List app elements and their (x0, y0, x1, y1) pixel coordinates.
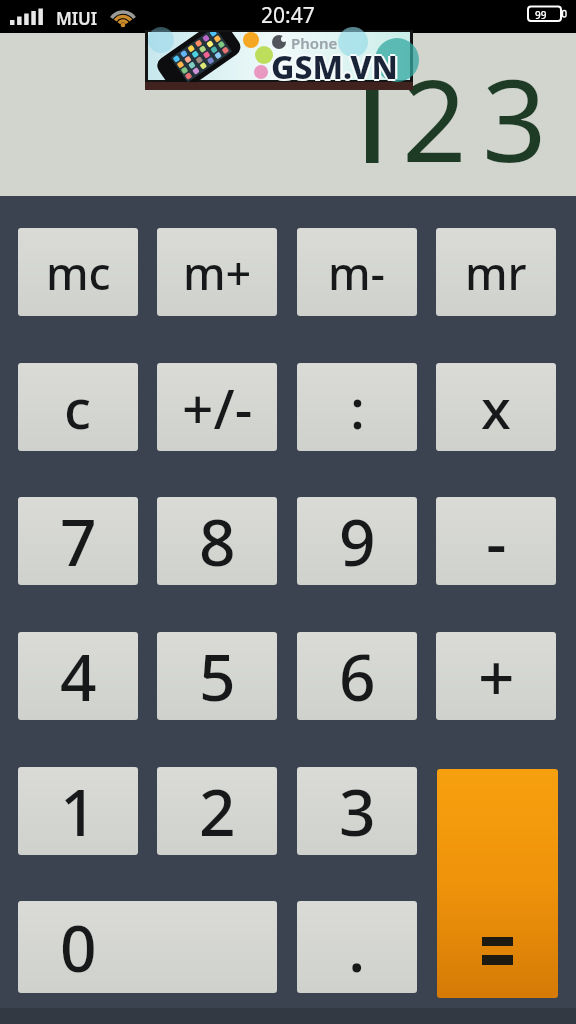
staticText: 2 (199, 768, 236, 855)
staticText: 0 (60, 904, 97, 991)
button[interactable]: 4 (18, 632, 138, 720)
staticText: +/- (182, 370, 253, 445)
button[interactable]: c (18, 363, 138, 451)
button[interactable]: mr (436, 228, 556, 316)
button[interactable]: m+ (157, 228, 277, 316)
button[interactable]: m- (297, 228, 417, 316)
staticText: GSM.VN (271, 43, 398, 87)
staticText: 1 (60, 768, 97, 855)
staticText: m+ (183, 242, 252, 303)
staticText: - (486, 498, 507, 585)
button[interactable]: 7 (18, 497, 138, 585)
button[interactable]: 6 (297, 632, 417, 720)
staticText: 7 (60, 498, 97, 585)
button[interactable]: +/- (157, 363, 277, 451)
button[interactable]: 9 (297, 497, 417, 585)
staticText: MIUI (56, 7, 98, 30)
button[interactable]: 3 (297, 767, 417, 855)
staticText: . (348, 904, 366, 991)
staticText: Phone (291, 33, 338, 53)
button[interactable]: x (436, 363, 556, 451)
staticText: 5 (199, 633, 236, 720)
button[interactable]: 5 (157, 632, 277, 720)
staticText: GSM.VN (271, 47, 398, 91)
button[interactable]: 8 (157, 497, 277, 585)
button[interactable] (437, 769, 558, 998)
staticText: 3 (482, 41, 547, 195)
staticText: mc (46, 242, 111, 303)
staticText: GSM.VN (271, 45, 398, 89)
staticText: m- (328, 242, 386, 303)
button[interactable]: - (436, 497, 556, 585)
button[interactable]: . (297, 901, 417, 993)
staticText: GSM.VN (273, 45, 400, 89)
staticText: 4 (60, 633, 97, 720)
staticText: 99 (535, 8, 547, 22)
staticText: x (481, 370, 511, 445)
button[interactable]: Phone (145, 30, 413, 90)
staticText: 20:47 (261, 1, 315, 30)
button[interactable]: 0 (18, 901, 277, 993)
button[interactable]: + (436, 632, 556, 720)
button[interactable]: mc (18, 228, 138, 316)
button[interactable]: : (297, 363, 417, 451)
staticText: 9 (339, 498, 376, 585)
staticText: 2 (402, 41, 467, 195)
staticText: : (350, 370, 365, 445)
staticText: GSM.VN (269, 45, 396, 89)
staticText: 6 (339, 633, 376, 720)
staticText: mr (465, 242, 527, 303)
button[interactable]: 1 (18, 767, 138, 855)
staticText: c (64, 370, 92, 445)
staticText: + (478, 633, 515, 720)
staticText: 3 (339, 768, 376, 855)
button[interactable]: 2 (157, 767, 277, 855)
staticText: 8 (199, 498, 236, 585)
